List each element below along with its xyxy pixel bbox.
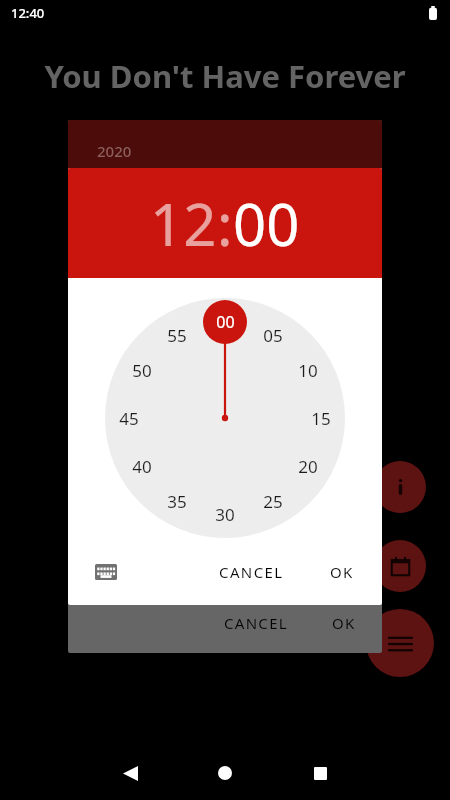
- staticText: 10: [298, 359, 318, 382]
- button[interactable]: Recents: [299, 752, 341, 794]
- staticText: 50: [132, 359, 152, 382]
- staticText: 12: [150, 184, 217, 263]
- button[interactable]: Switch to text input: [88, 554, 124, 590]
- staticText: 00: [233, 184, 300, 263]
- staticText: 2020: [97, 141, 132, 161]
- staticText: CANCEL: [224, 613, 288, 633]
- staticText: 25: [263, 490, 283, 513]
- button[interactable]: 00: [233, 184, 300, 263]
- staticText: 55: [167, 324, 187, 347]
- staticText: 05: [263, 324, 283, 347]
- staticText: OK: [332, 613, 356, 633]
- staticText: 30: [215, 503, 235, 526]
- staticText: 12:40: [11, 4, 45, 22]
- button[interactable]: OK: [322, 556, 362, 588]
- staticText: 45: [119, 407, 139, 430]
- staticText: 15: [311, 407, 331, 430]
- button[interactable]: Back: [109, 752, 151, 794]
- staticText: 35: [167, 490, 187, 513]
- button[interactable]: Calendar: [374, 540, 426, 592]
- button[interactable]: Menu: [366, 609, 434, 677]
- button[interactable]: OK: [324, 607, 364, 639]
- button[interactable]: 00: [105, 298, 345, 538]
- staticText: You Don't Have Forever: [0, 55, 450, 97]
- staticText: 40: [132, 455, 152, 478]
- button[interactable]: Home: [204, 752, 246, 794]
- staticText: :: [217, 184, 233, 263]
- staticText: Wed, Nov 18: [95, 163, 280, 205]
- staticText: 00: [216, 311, 235, 333]
- button[interactable]: 12: [150, 184, 217, 263]
- button[interactable]: CANCEL: [216, 607, 296, 639]
- staticText: OK: [330, 562, 354, 582]
- button[interactable]: Information: [374, 461, 426, 513]
- button[interactable]: CANCEL: [211, 556, 292, 588]
- staticText: CANCEL: [219, 562, 284, 582]
- staticText: 20: [298, 455, 318, 478]
